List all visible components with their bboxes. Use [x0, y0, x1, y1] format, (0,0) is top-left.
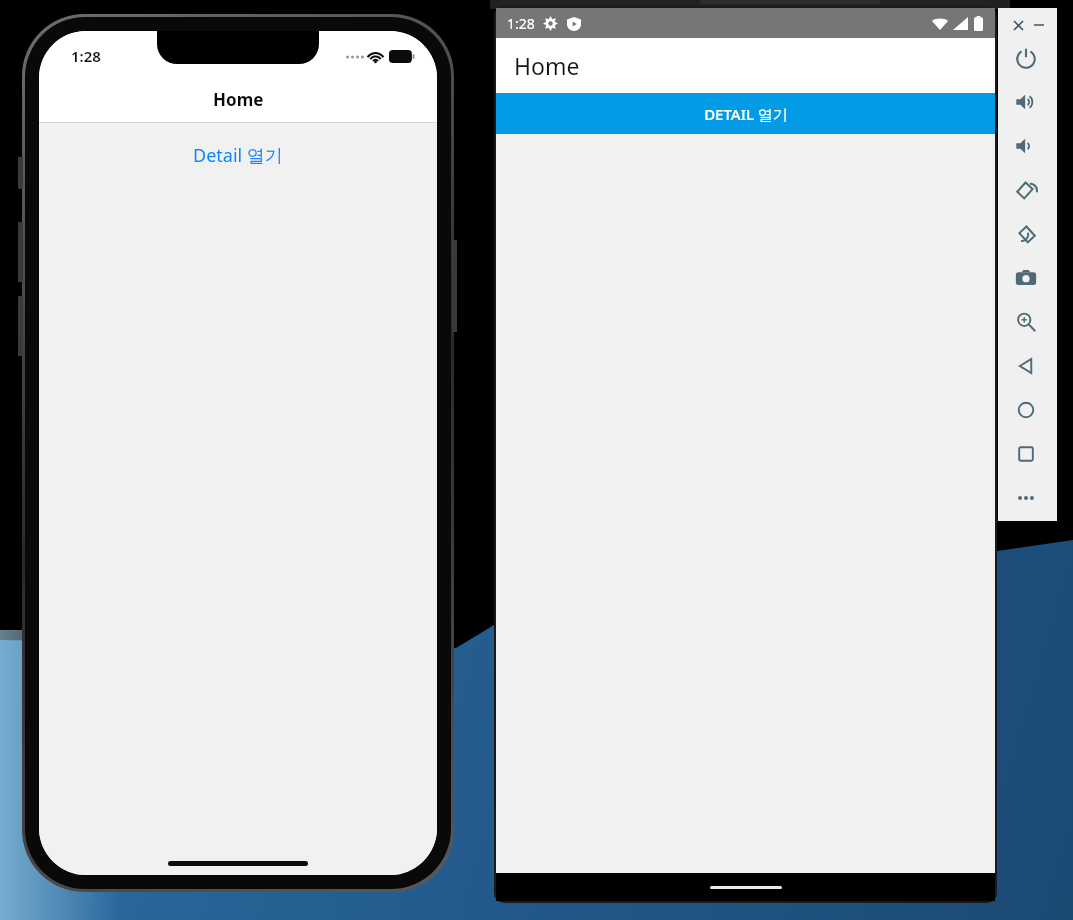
button[interactable]: Overview [1008, 436, 1044, 472]
button[interactable]: Volume up [1008, 84, 1044, 120]
button[interactable]: Close [1007, 14, 1029, 36]
staticText: 1:28 [507, 14, 535, 33]
button[interactable]: More [1008, 480, 1044, 516]
button[interactable]: Rotate right [1008, 216, 1044, 252]
button[interactable]: Volume down [1008, 128, 1044, 164]
button[interactable]: Zoom [1008, 304, 1044, 340]
staticText: Detail 열기 [193, 143, 283, 168]
button[interactable]: Rotate left [1008, 172, 1044, 208]
staticText: Home [514, 50, 580, 81]
button[interactable]: Minimize [1028, 14, 1050, 36]
staticText: DETAIL 열기 [704, 104, 788, 124]
button[interactable]: Take screenshot [1008, 260, 1044, 296]
button[interactable]: Detail 열기 [179, 139, 297, 172]
button[interactable]: Home [1008, 392, 1044, 428]
staticText: Home [213, 88, 264, 111]
staticText: 1:28 [71, 46, 101, 66]
button[interactable]: DETAIL 열기 [496, 93, 995, 134]
button[interactable]: Power [1008, 40, 1044, 76]
button[interactable]: Back [1008, 348, 1044, 384]
